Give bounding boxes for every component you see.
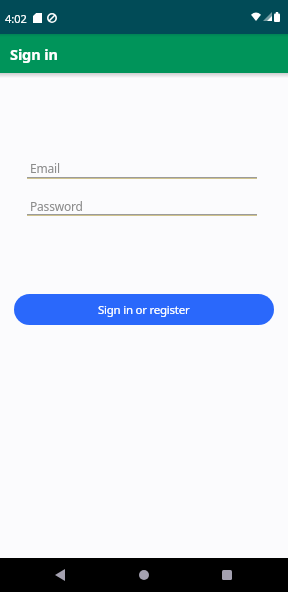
- button[interactable]: Sign in or register: [14, 294, 274, 325]
- staticText: Email: [30, 160, 60, 176]
- button[interactable]: [128, 558, 160, 592]
- staticText: Sign in: [10, 44, 58, 64]
- button[interactable]: [211, 558, 243, 592]
- button[interactable]: [27, 177, 257, 179]
- staticText: Password: [30, 198, 83, 214]
- button[interactable]: [44, 558, 76, 592]
- staticText: 4:02: [5, 11, 27, 26]
- staticText: Sign in or register: [98, 302, 190, 318]
- button[interactable]: [27, 214, 257, 216]
